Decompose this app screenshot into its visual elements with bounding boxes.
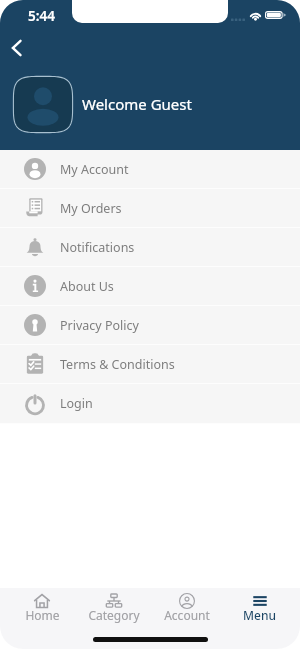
button[interactable]: Terms & Conditions bbox=[0, 345, 300, 383]
staticText: Menu bbox=[243, 607, 276, 623]
staticText: About Us bbox=[60, 278, 114, 295]
staticText: Category bbox=[88, 607, 140, 623]
staticText: Home bbox=[25, 607, 60, 623]
button[interactable]: My Orders bbox=[0, 189, 300, 227]
staticText: Notifications bbox=[60, 239, 135, 256]
button[interactable]: Privacy Policy bbox=[0, 306, 300, 344]
staticText: My Account bbox=[60, 161, 129, 178]
staticText: Welcome Guest bbox=[82, 94, 192, 114]
staticText: 5:44 bbox=[28, 7, 55, 25]
button[interactable]: About Us bbox=[0, 267, 300, 305]
staticText: Privacy Policy bbox=[60, 317, 139, 334]
button[interactable]: My Account bbox=[0, 150, 300, 188]
staticText: Login bbox=[60, 395, 93, 412]
button[interactable]: Category bbox=[78, 588, 150, 625]
staticText: Terms & Conditions bbox=[60, 356, 175, 373]
staticText: My Orders bbox=[60, 200, 122, 217]
button[interactable]: Account bbox=[150, 588, 223, 625]
button[interactable]: Menu bbox=[223, 588, 296, 625]
button[interactable]: Home bbox=[6, 588, 78, 625]
button[interactable]: Back bbox=[2, 33, 32, 63]
button[interactable]: Login bbox=[0, 384, 300, 423]
staticText: Account bbox=[164, 607, 210, 623]
button[interactable]: Notifications bbox=[0, 228, 300, 266]
